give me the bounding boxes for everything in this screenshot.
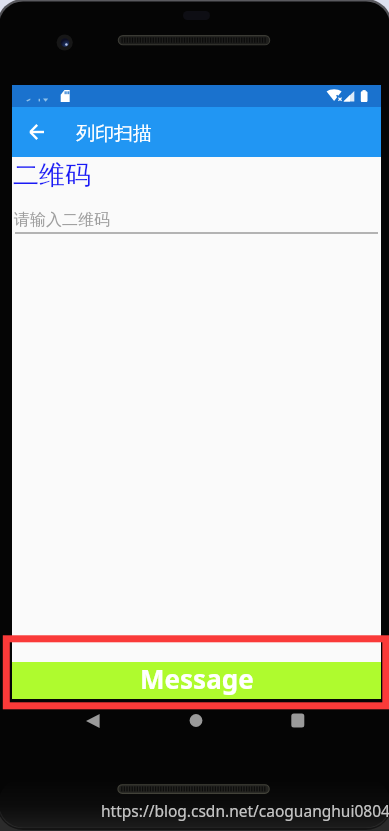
button[interactable]: Back xyxy=(12,107,59,157)
staticText: Message xyxy=(140,661,254,696)
staticText: 列印扫描 xyxy=(76,122,152,146)
staticText: https://blog.csdn.net/caoguanghui0804 xyxy=(101,800,389,821)
staticText: 二维码 xyxy=(13,159,91,192)
button[interactable]: Message xyxy=(12,662,381,699)
staticText: 请输入二维码 xyxy=(14,210,110,230)
